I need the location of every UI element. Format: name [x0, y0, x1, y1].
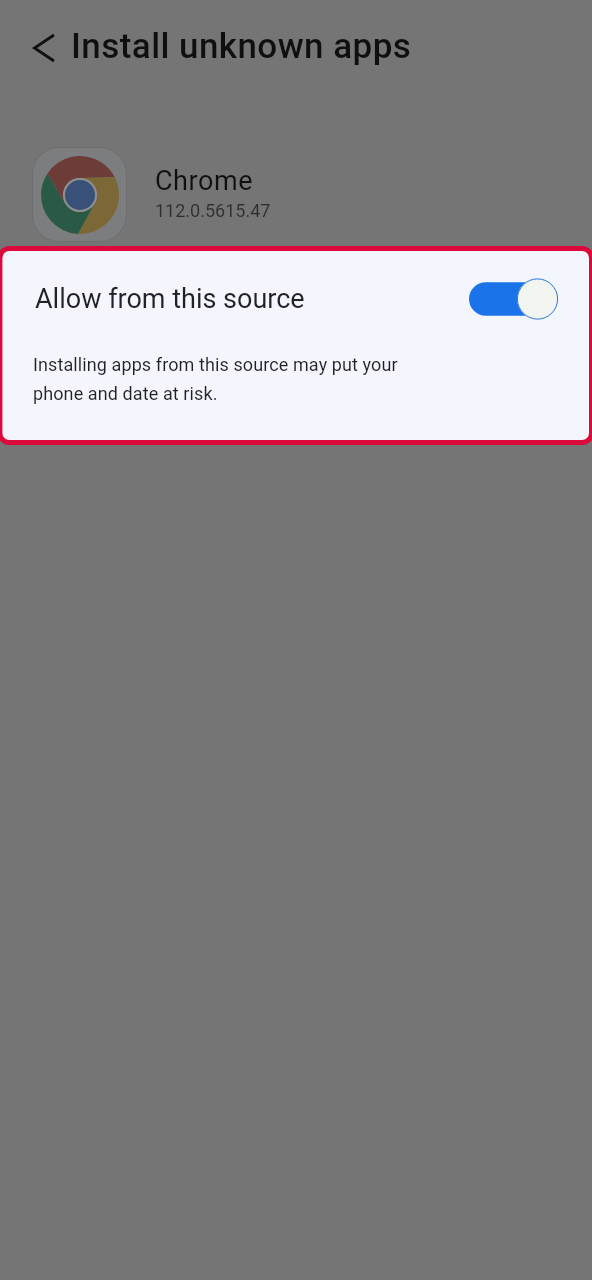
- button[interactable]: Allow from this source: [465, 276, 559, 322]
- button[interactable]: Allow from this source: [0, 265, 592, 332]
- staticText: Chrome: [155, 165, 254, 197]
- staticText: Install unknown apps: [71, 26, 412, 67]
- staticText: 112.0.5615.47: [155, 200, 271, 221]
- button[interactable]: Back: [20, 22, 68, 70]
- staticText: Allow from this source: [35, 283, 305, 315]
- button[interactable]: Chrome: [0, 130, 592, 258]
- staticText: Installing apps from this source may put…: [33, 354, 433, 404]
